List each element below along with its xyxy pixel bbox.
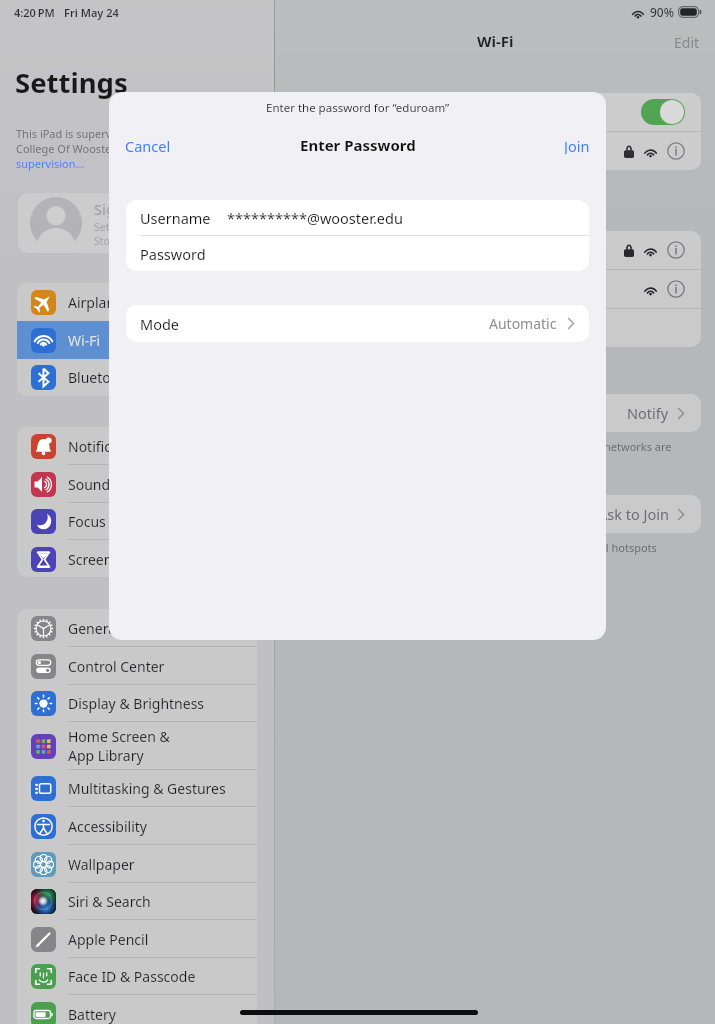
staticText: App Library	[68, 746, 144, 765]
staticText: supervision...	[16, 156, 85, 171]
staticText: Siri & Search	[68, 892, 151, 911]
staticText: Multitasking & Gestures	[68, 779, 226, 798]
button[interactable]: Auto-Join Hotspot	[289, 495, 701, 533]
button[interactable]: Wooster Guest	[289, 270, 701, 308]
button[interactable]: Edit	[674, 33, 700, 52]
staticText: This iPad is supervised and managed by T…	[16, 126, 244, 141]
staticText: Face ID & Passcode	[68, 967, 196, 986]
staticText: Focus	[68, 512, 106, 531]
button[interactable]: Accessibility	[17, 807, 257, 845]
button[interactable]: Bluetooth	[17, 358, 257, 396]
staticText: College Of Wooster. Learn more about dev…	[16, 141, 249, 156]
staticText: Wi-Fi	[477, 31, 514, 51]
staticText: MY NETWORKS	[305, 210, 384, 225]
button[interactable]: Username	[126, 200, 589, 235]
button[interactable]: Airplane Mode	[17, 283, 257, 321]
staticText: Allow this device to automatically disco…	[305, 540, 657, 555]
button[interactable]: Join	[548, 133, 606, 157]
button[interactable]: Password	[126, 236, 589, 271]
button[interactable]: Wi-Fi	[289, 93, 701, 131]
button[interactable]: Home Screen &	[17, 722, 257, 770]
button[interactable]: Siri & Search	[17, 882, 257, 920]
staticText: Screen Time	[68, 550, 149, 569]
button[interactable]: Wi-Fi	[17, 321, 257, 359]
staticText: Ask to Join	[598, 504, 669, 524]
staticText: Store and more.	[94, 234, 174, 248]
staticText: Set up iCloud, the App	[94, 220, 204, 234]
staticText: Display & Brightness	[68, 694, 205, 713]
staticText: Automatic	[489, 314, 557, 333]
staticText: Wallpaper	[68, 855, 135, 874]
button[interactable]: Cancel	[109, 133, 187, 157]
staticText: Control Center	[68, 657, 165, 676]
button[interactable]: eduroam	[289, 132, 701, 170]
button[interactable]: Screen Time	[17, 540, 257, 577]
button[interactable]: Face ID & Passcode	[17, 957, 257, 995]
staticText: Wi-Fi	[305, 102, 339, 122]
button[interactable]: Ask to Join Networks	[289, 394, 701, 432]
button[interactable]: Multitasking & Gestures	[17, 769, 257, 807]
staticText: eduroam	[305, 141, 368, 161]
button[interactable]: Mode	[126, 305, 589, 342]
button[interactable]: Sounds	[17, 465, 257, 503]
staticText: 90%	[650, 4, 674, 20]
button[interactable]: Wallpaper	[17, 845, 257, 883]
button[interactable]: WoosterWireless	[289, 231, 701, 269]
staticText: Bluetooth	[68, 368, 133, 387]
button[interactable]: Battery	[17, 995, 257, 1024]
staticText: Cancel	[125, 136, 171, 154]
button[interactable]: Wi-Fi toggle	[641, 99, 685, 125]
staticText: General	[68, 619, 120, 638]
staticText: Enter Password	[300, 135, 416, 155]
staticText: Mode	[140, 314, 180, 334]
staticText: Accessibility	[68, 817, 147, 836]
staticText: Fri May 24	[64, 5, 119, 20]
staticText: Password	[140, 244, 206, 264]
button[interactable]: Sign in to your iPad	[18, 193, 257, 253]
button[interactable]: Apple Pencil	[17, 920, 257, 958]
button[interactable]: Focus	[17, 502, 257, 540]
button[interactable]: Notifications	[17, 427, 257, 465]
button[interactable]: General	[17, 609, 257, 647]
staticText: Apple Pencil	[68, 930, 149, 949]
staticText: Sign in to your iPad	[94, 199, 229, 219]
staticText: **********@wooster.edu	[227, 208, 403, 228]
staticText: Username	[140, 208, 211, 228]
staticText: Airplane Mode	[68, 293, 165, 312]
button[interactable]: Control Center	[17, 647, 257, 685]
staticText: Known networks will be joined automatica…	[305, 439, 672, 454]
staticText: Battery	[68, 1005, 116, 1024]
button[interactable]: Other...	[289, 309, 701, 347]
staticText: Join	[564, 136, 590, 154]
staticText: Sounds	[68, 475, 117, 494]
staticText: Notifications	[68, 437, 152, 456]
staticText: Settings	[15, 64, 128, 101]
button[interactable]: Display & Brightness	[17, 684, 257, 722]
staticText: Enter the password for “eduroam”	[266, 100, 450, 116]
staticText: 4:20 PM	[14, 5, 55, 20]
staticText: Home Screen &	[68, 727, 170, 746]
staticText: Notify	[627, 403, 669, 423]
staticText: Wi-Fi	[68, 331, 101, 350]
